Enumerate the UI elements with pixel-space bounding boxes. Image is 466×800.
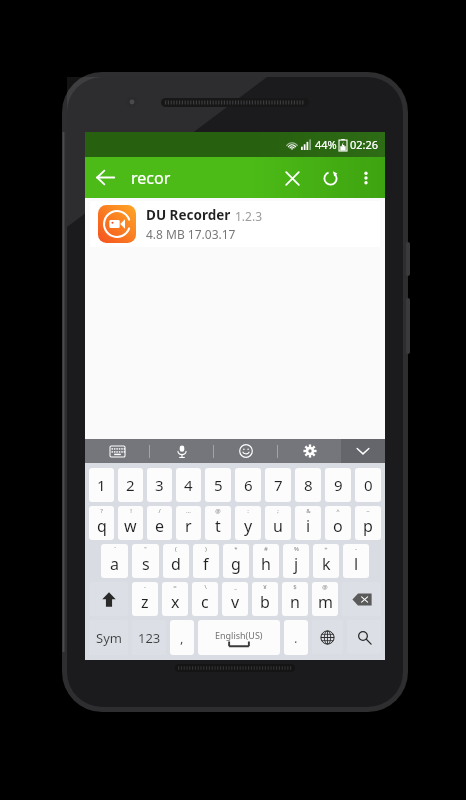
staticText: DU Recorder [146,206,231,224]
button[interactable]: ` [101,544,128,578]
button[interactable]: ? [89,506,114,540]
staticText: ) [205,545,207,553]
button[interactable]: . [284,620,308,655]
button[interactable]: ) [193,544,219,578]
button[interactable]: , [170,620,194,655]
staticText: # [264,545,268,553]
staticText: v [231,591,240,613]
button[interactable]: % [283,544,309,578]
button[interactable]: Shift [89,582,128,616]
staticText: + [324,545,328,553]
button[interactable]: 9 [325,468,351,502]
staticText: x [171,591,180,613]
staticText: g [231,553,241,575]
staticText: " [144,545,147,553]
button[interactable]: 8 [295,468,321,502]
button[interactable]: \ [192,582,218,616]
staticText: 1 [97,475,106,495]
staticText: 1.2.3 [235,208,263,224]
staticText: @ [322,583,328,591]
button[interactable]: ; [265,506,291,540]
staticText: 4.8 MB 17.03.17 [146,226,236,242]
button[interactable]: 5 [205,468,231,502]
staticText: 4 [184,475,193,495]
button[interactable]: 2 [118,468,143,502]
button[interactable]: + [313,544,339,578]
button[interactable]: Settings [278,439,341,463]
button[interactable]: / [147,506,172,540]
button[interactable]: & [295,506,321,540]
staticText: l [354,553,359,575]
button[interactable]: Keyboard layout [85,439,149,463]
staticText: w [124,515,137,537]
staticText: 7 [274,475,283,495]
button[interactable]: # [253,544,279,578]
button[interactable]: " [132,544,159,578]
staticText: : [247,507,249,515]
staticText: 6 [244,475,253,495]
button[interactable]: * [223,544,249,578]
button[interactable]: = [162,582,188,616]
staticText: ¥ [263,583,267,591]
button[interactable]: Back [85,157,126,198]
staticText: h [261,553,271,575]
button[interactable]: Backspace [342,582,381,616]
button[interactable]: Change language [312,620,343,654]
staticText: 2 [126,475,135,495]
button[interactable]: ^ [325,506,351,540]
button[interactable]: 4 [176,468,201,502]
button[interactable]: Emoji [214,439,277,463]
button[interactable]: DU Recorder [90,201,380,247]
staticText: ` [114,545,116,553]
staticText: t [215,515,221,537]
button[interactable]: 1 [89,468,114,502]
staticText: 5 [214,475,223,495]
button[interactable]: 7 [265,468,291,502]
button[interactable]: : [235,506,261,540]
staticText: a [110,553,119,575]
staticText: Sym [96,629,122,647]
button[interactable]: More options [349,161,383,195]
staticText: ? [100,507,103,515]
button[interactable]: Hide keyboard [341,439,385,463]
button[interactable]: @ [312,582,338,616]
button[interactable]: $ [282,582,308,616]
staticText: $ [293,583,297,591]
staticText: * [234,545,238,553]
staticText: 8 [304,475,313,495]
button[interactable]: Clear [273,159,311,197]
staticText: n [290,591,300,613]
staticText: = [173,583,177,591]
button[interactable]: ( [163,544,189,578]
button[interactable]: ~ [355,506,381,540]
staticText: j [294,553,299,575]
staticText: . [294,629,298,647]
button[interactable]: Search [347,620,381,654]
button[interactable]: 0 [355,468,381,502]
button[interactable]: Voice input [150,439,213,463]
button[interactable]: 6 [235,468,261,502]
button[interactable]: Sym [89,620,128,655]
button[interactable]: - [132,582,158,616]
staticText: c [201,591,209,613]
button[interactable]: 123 [132,620,166,655]
button[interactable]: - [343,544,369,578]
staticText: r [185,515,192,537]
staticText: _ [234,583,237,591]
staticText: d [171,553,181,575]
button[interactable]: Space, English(US) [198,620,280,655]
staticText: i [306,515,311,537]
button[interactable]: Refresh [311,159,349,197]
staticText: 44% [315,137,337,152]
button[interactable]: ¥ [252,582,278,616]
staticText: @ [215,507,221,515]
button[interactable]: _ [222,582,248,616]
button[interactable]: ... [176,506,201,540]
button[interactable]: 3 [147,468,172,502]
staticText: m [318,591,333,613]
button[interactable]: @ [205,506,231,540]
staticText: ^ [336,507,340,515]
staticText: 02:26 [350,137,379,152]
button[interactable]: ! [118,506,143,540]
staticText: 3 [155,475,164,495]
